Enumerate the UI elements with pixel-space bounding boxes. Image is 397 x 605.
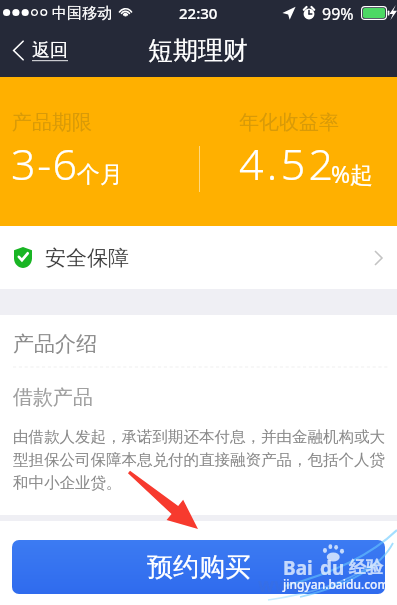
staticText: 经验 <box>349 557 383 578</box>
staticText: 预约购买 <box>147 551 251 584</box>
staticText: 中国移动 <box>52 4 112 23</box>
staticText: Bai <box>283 555 313 581</box>
button[interactable]: 预约购买 <box>12 540 385 594</box>
staticText: %起 <box>331 158 374 189</box>
staticText: 个月 <box>77 160 123 189</box>
staticText: 99% <box>322 3 354 25</box>
staticText: 4.52 <box>239 134 337 193</box>
staticText: www <box>258 572 307 598</box>
staticText: 由借款人发起，承诺到期还本付息，并由金融机构或大型担保公司保障本息兑付的直接融资… <box>13 427 387 493</box>
staticText: 年化收益率 <box>239 110 339 135</box>
staticText: 产品介绍 <box>13 331 97 357</box>
staticText: 3-6 <box>11 134 79 193</box>
staticText: 安全保障 <box>45 245 129 271</box>
staticText: 产品期限 <box>12 110 92 135</box>
button[interactable]: 返回 <box>0 34 78 67</box>
staticText: jingyan.baidu.com <box>283 576 389 592</box>
other: Annotation arrow <box>0 0 397 605</box>
staticText: 22:30 <box>179 3 218 23</box>
staticText: du <box>320 555 345 581</box>
staticText: 短期理财 <box>148 35 248 66</box>
button[interactable]: 安全保障 <box>0 226 397 289</box>
staticText: 返回 <box>32 39 68 62</box>
staticText: 借款产品 <box>13 385 93 410</box>
